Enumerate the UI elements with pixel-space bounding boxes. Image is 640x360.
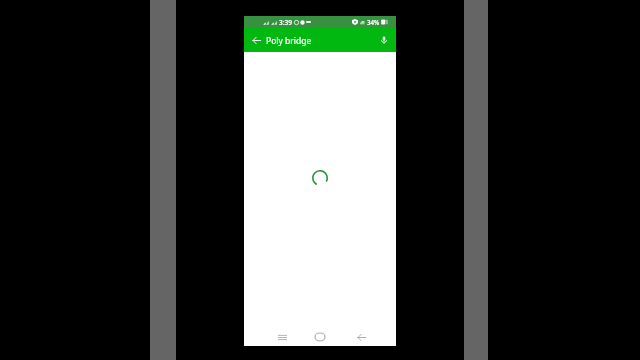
button[interactable]: Voice search [372,28,396,52]
button[interactable]: Recent apps [269,327,295,347]
staticText: 34% [367,18,380,26]
staticText: 3:39 [279,18,292,27]
button[interactable]: Home [307,327,333,347]
staticText: Poly bridge [266,35,312,47]
button[interactable]: Back [244,28,268,52]
button[interactable]: Back [348,327,374,347]
